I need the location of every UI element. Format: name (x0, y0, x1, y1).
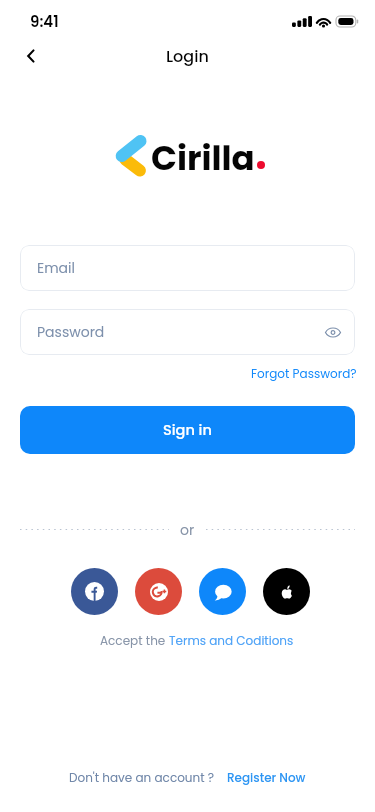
staticText: Terms and Coditions (169, 632, 294, 649)
button[interactable]: Terms and Coditions (169, 632, 294, 649)
staticText: Email (37, 258, 75, 278)
button[interactable]: Register Now (227, 769, 306, 786)
button[interactable]: Sign in (20, 406, 355, 454)
staticText: Accept the (100, 632, 169, 649)
button[interactable]: Forgot Password? (251, 365, 357, 382)
button[interactable]: Show password (320, 319, 346, 345)
button[interactable]: Password (20, 309, 355, 355)
staticText: Password (37, 322, 105, 342)
staticText: Sign in (163, 420, 212, 440)
button[interactable]: Messenger (199, 568, 246, 615)
button[interactable]: Apple (263, 568, 310, 615)
staticText: 9:41 (30, 11, 59, 32)
staticText: Don't have an account ? (69, 769, 215, 786)
staticText: or (180, 520, 195, 538)
staticText: Cirilla (151, 134, 255, 178)
button[interactable]: Back (16, 41, 46, 71)
staticText: Forgot Password? (251, 365, 357, 382)
button[interactable]: Email (20, 245, 355, 291)
button[interactable]: Google Plus (135, 568, 182, 615)
staticText: Login (166, 45, 209, 67)
button[interactable]: Facebook (71, 568, 118, 615)
staticText: Register Now (227, 769, 306, 786)
